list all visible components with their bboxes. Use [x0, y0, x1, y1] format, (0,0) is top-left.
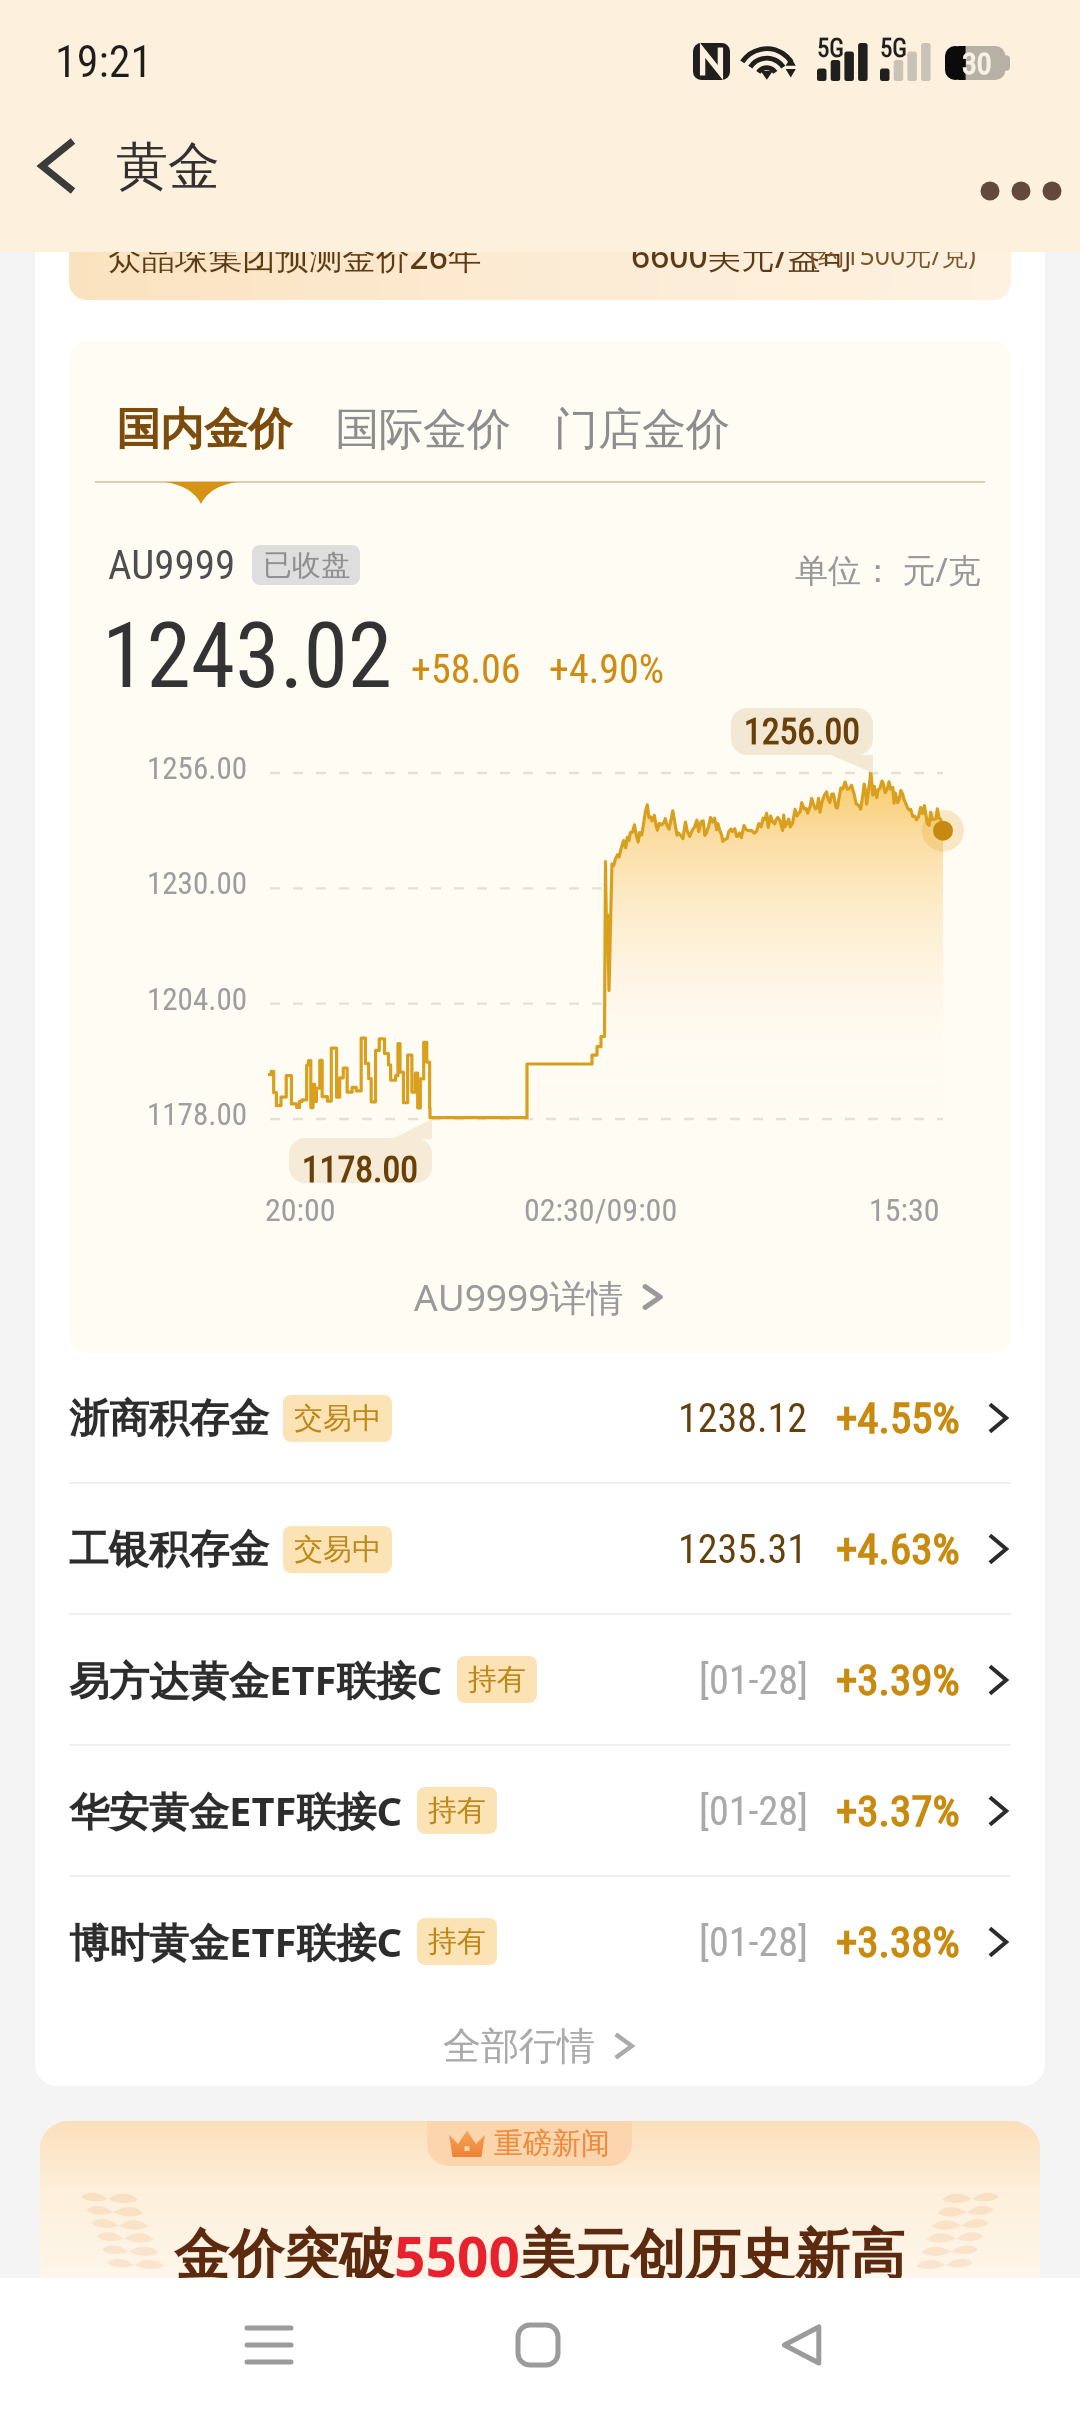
staticText: AU9999 — [108, 541, 236, 589]
button[interactable]: 全部行情 — [423, 2012, 657, 2080]
staticText: 19:21 — [55, 36, 153, 88]
staticText: 交易中 — [294, 1531, 381, 1568]
staticText: 工银积存金 — [69, 1524, 269, 1574]
staticText: 30 — [962, 46, 992, 80]
button[interactable]: Back — [22, 139, 92, 209]
staticText: +58.06 — [411, 646, 521, 693]
staticText: +4.90% — [549, 646, 664, 693]
button[interactable]: Home — [483, 2290, 593, 2400]
staticText: 金价突破 — [174, 2221, 394, 2290]
staticText: 1256.00 — [744, 711, 861, 753]
staticText: 浙商积存金 — [69, 1393, 269, 1443]
button[interactable]: 工银积存金 — [35, 1484, 1045, 1613]
button[interactable]: 博时黄金ETF联接C — [35, 1877, 1045, 2006]
staticText: 全部行情 — [443, 2022, 595, 2070]
staticText: 1243.02 — [102, 604, 393, 709]
staticText: 美元创历史新高 — [520, 2221, 905, 2290]
staticText: 15:30 — [869, 1191, 940, 1229]
staticText: 持有 — [468, 1661, 526, 1698]
staticText: (约1500元/克) — [810, 237, 976, 273]
button[interactable]: 华安黄金ETF联接C — [35, 1746, 1045, 1875]
button[interactable]: 易方达黄金ETF联接C — [35, 1615, 1045, 1744]
staticText: 单位： 元/克 — [795, 547, 981, 592]
button[interactable]: Recents — [214, 2290, 324, 2400]
staticText: 5500 — [394, 2218, 520, 2293]
staticText: 华安黄金ETF联接C — [69, 1783, 403, 1838]
staticText: 5G — [880, 34, 908, 63]
staticText: 6600美元/盎司 — [631, 232, 855, 278]
button[interactable]: AU9999详情 — [414, 1271, 666, 1322]
staticText: 02:30/09:00 — [524, 1191, 678, 1229]
staticText: 1235.31 — [678, 1526, 808, 1573]
staticText: +4.55% — [836, 1393, 960, 1443]
staticText: [01-28] — [699, 1657, 808, 1704]
staticText: 1178.00 — [97, 1096, 247, 1132]
staticText: 1178.00 — [302, 1149, 419, 1191]
staticText: [01-28] — [699, 1919, 808, 1966]
staticText: +4.63% — [836, 1524, 960, 1574]
staticText: 1204.00 — [97, 981, 247, 1017]
staticText: 交易中 — [294, 1400, 381, 1437]
staticText: 1238.12 — [678, 1395, 808, 1442]
button[interactable]: Back — [747, 2290, 857, 2400]
staticText: 1256.00 — [97, 750, 247, 786]
button[interactable]: 浙商积存金 — [35, 1353, 1045, 1482]
staticText: 易方达黄金ETF联接C — [69, 1652, 443, 1707]
button[interactable]: More options — [984, 154, 1058, 228]
staticText: AU9999详情 — [414, 1271, 624, 1322]
staticText: +3.39% — [836, 1655, 960, 1705]
staticText: +3.37% — [836, 1786, 960, 1836]
staticText: 黄金 — [116, 134, 220, 200]
staticText: 博时黄金ETF联接C — [69, 1914, 403, 1969]
staticText: 重磅新闻 — [494, 2125, 610, 2162]
button[interactable]: 门店金价 — [554, 402, 730, 457]
staticText: 20:00 — [265, 1191, 336, 1229]
staticText: 持有 — [428, 1792, 486, 1829]
button[interactable]: 国际金价 — [335, 402, 511, 457]
staticText: +3.38% — [836, 1917, 960, 1967]
button[interactable]: 重磅新闻 — [40, 2121, 1040, 2321]
staticText: [01-28] — [699, 1788, 808, 1835]
staticText: 已收盘 — [263, 547, 350, 584]
staticText: 5G — [817, 34, 845, 63]
button[interactable]: 国内金价 — [116, 402, 292, 457]
staticText: 持有 — [428, 1923, 486, 1960]
staticText: 1230.00 — [97, 865, 247, 901]
staticText: 众晶垛集团预测金价26年 — [108, 233, 482, 279]
